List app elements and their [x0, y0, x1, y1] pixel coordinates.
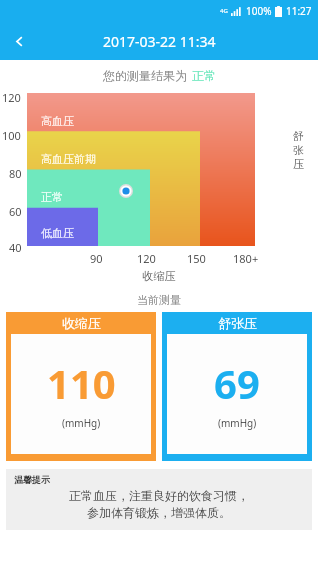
staticText: 2017-03-22 11:34	[103, 32, 216, 51]
staticText: 69	[214, 356, 260, 410]
staticText: 120	[137, 251, 156, 266]
staticText: (mmHg)	[62, 416, 101, 430]
staticText: 150	[187, 251, 206, 266]
button[interactable]: 舒张压	[162, 312, 312, 461]
staticText: 120	[2, 90, 21, 105]
staticText: 张	[293, 143, 304, 157]
staticText: 当前测量	[0, 293, 318, 307]
staticText: 舒	[293, 129, 304, 143]
staticText: 高血压前期	[41, 152, 96, 166]
button[interactable]: 收缩压	[6, 312, 156, 461]
staticText: 180+	[233, 251, 259, 266]
staticText: 正常	[41, 190, 63, 204]
staticText: 正常	[192, 68, 216, 83]
staticText: 100	[2, 128, 21, 143]
staticText: 110	[47, 356, 116, 410]
staticText: 您的测量结果为	[103, 68, 187, 83]
staticText: 11:27	[286, 4, 312, 18]
staticText: 收缩压	[0, 269, 318, 283]
staticText: 正常血压，注重良好的饮食习惯， 参加体育锻炼，增强体质。	[14, 488, 304, 520]
staticText: 40	[9, 240, 22, 255]
staticText: (mmHg)	[218, 416, 257, 430]
staticText: 高血压	[41, 114, 74, 128]
staticText: 压	[293, 157, 304, 171]
staticText: 收缩压	[62, 315, 101, 331]
staticText: 80	[9, 166, 22, 181]
staticText: 低血压	[41, 226, 74, 240]
staticText: 4G	[220, 7, 228, 15]
staticText: 60	[9, 204, 22, 219]
staticText: 100%	[246, 4, 272, 18]
staticText: 温馨提示	[14, 474, 50, 485]
staticText: 90	[90, 251, 103, 266]
button[interactable]: Back	[0, 22, 38, 60]
staticText: 舒张压	[218, 315, 257, 331]
